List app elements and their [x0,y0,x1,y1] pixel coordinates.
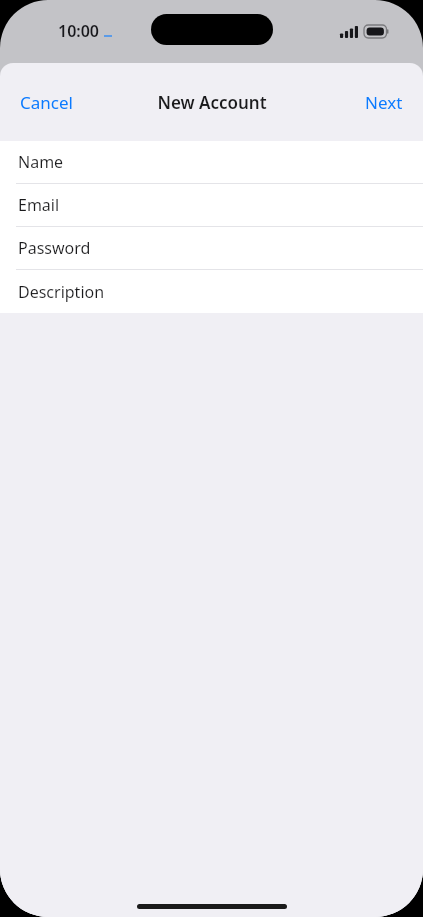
staticText: Email [18,194,60,216]
button[interactable]: Description [0,270,423,313]
button[interactable]: Name [0,141,423,184]
staticText: 10:00 [58,20,100,42]
staticText: Name [18,151,64,173]
button[interactable]: Email [0,184,423,227]
staticText: Next [365,91,403,114]
staticText: Description [18,281,105,303]
staticText: New Account [157,91,267,114]
button[interactable]: Cancel [8,83,85,122]
staticText: Cancel [20,91,73,114]
button[interactable]: Password [0,227,423,270]
staticText: Password [18,237,91,259]
button[interactable]: Next [353,83,415,122]
